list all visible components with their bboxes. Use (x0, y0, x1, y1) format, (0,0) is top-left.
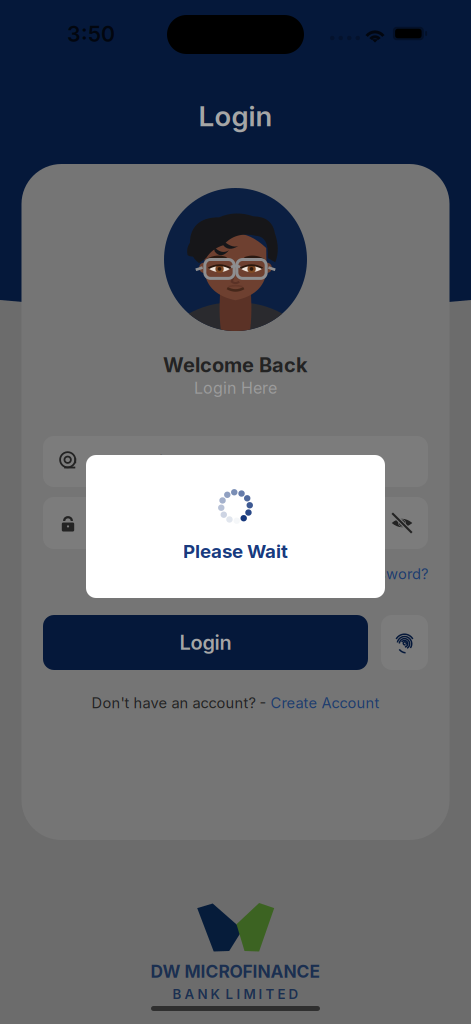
staticText: B A N K L I M I T E D (172, 986, 298, 1002)
staticText: mo.stephen (93, 451, 189, 472)
staticText: Please Wait (183, 540, 288, 563)
staticText: DW MICROFINANCE (150, 961, 320, 982)
staticText: Login (198, 99, 272, 133)
button[interactable]: Sign in with fingerprint (381, 615, 428, 670)
staticText: Welcome Back (163, 353, 308, 377)
staticText: Login (179, 630, 231, 655)
staticText: Don't have an account? - (91, 694, 270, 712)
staticText: Login Here (194, 378, 277, 398)
button[interactable]: Create Account (270, 694, 379, 712)
staticText: 3:50 (67, 21, 115, 47)
button[interactable]: Forgot Password? (304, 565, 428, 583)
button[interactable]: mo.stephen (43, 436, 428, 487)
staticText: Create Account (270, 694, 379, 712)
button[interactable]: •••••••• (43, 497, 428, 549)
button[interactable]: Login (43, 615, 368, 670)
staticText: Forgot Password? (304, 565, 428, 583)
